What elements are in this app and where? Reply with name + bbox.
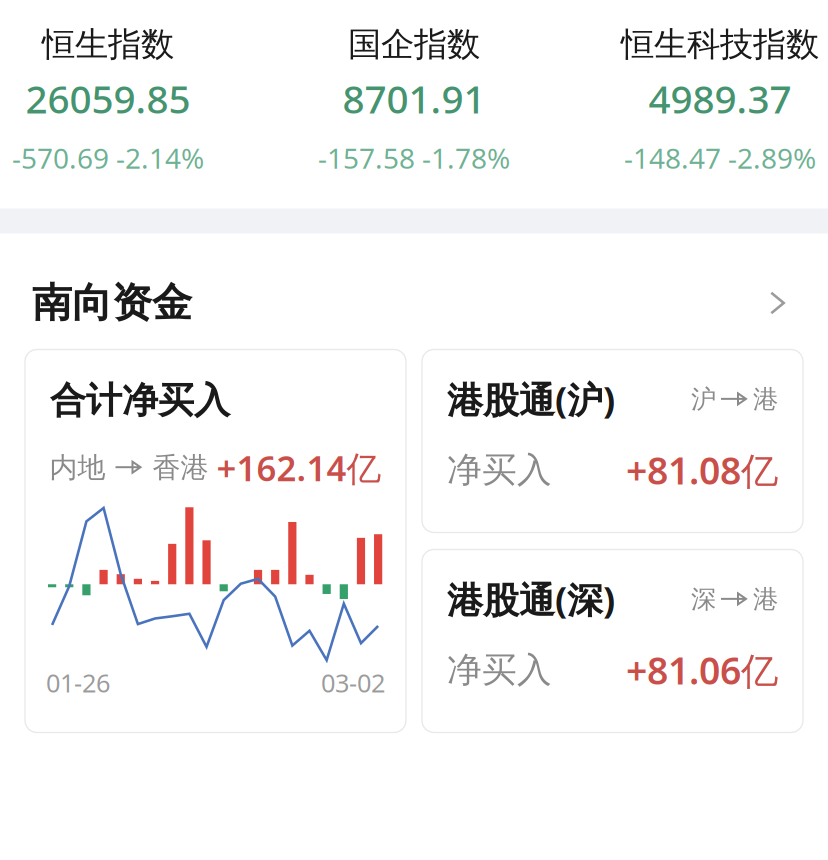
staticText: 南向资金 [32, 278, 192, 327]
staticText: 8701.91 [342, 73, 485, 124]
staticText: 净买入 [447, 649, 552, 691]
button[interactable]: 港股通(深) [422, 549, 803, 732]
staticText: 港 [753, 584, 778, 615]
button[interactable]: 港股通(沪) [422, 349, 803, 532]
staticText: 01-26 [46, 666, 110, 699]
staticText: 香港 [152, 450, 208, 485]
button[interactable]: 南向资金 [0, 278, 828, 327]
staticText: 4989.37 [648, 73, 791, 124]
staticText: 净买入 [447, 449, 552, 491]
button[interactable]: 合计净买入 [25, 349, 406, 732]
staticText: +81.06亿 [626, 645, 778, 695]
staticText: -157.58 -1.78% [318, 139, 510, 176]
staticText: 深 [691, 584, 716, 615]
staticText: 港 [753, 384, 778, 415]
staticText: -148.47 -2.89% [624, 139, 816, 176]
staticText: 港股通(深) [447, 575, 615, 623]
staticText: +81.08亿 [626, 445, 778, 495]
staticText: 港股通(沪) [447, 375, 615, 423]
staticText: 26059.85 [25, 73, 190, 124]
staticText: 恒生科技指数 [621, 24, 819, 65]
staticText: 合计净买入 [50, 378, 230, 423]
staticText: +162.14亿 [216, 445, 381, 491]
staticText: 内地 [49, 450, 105, 485]
staticText: 国企指数 [348, 24, 480, 65]
staticText: 沪 [691, 384, 716, 415]
staticText: 03-02 [321, 666, 385, 699]
staticText: 恒生指数 [42, 24, 174, 65]
staticText: -570.69 -2.14% [12, 139, 204, 176]
